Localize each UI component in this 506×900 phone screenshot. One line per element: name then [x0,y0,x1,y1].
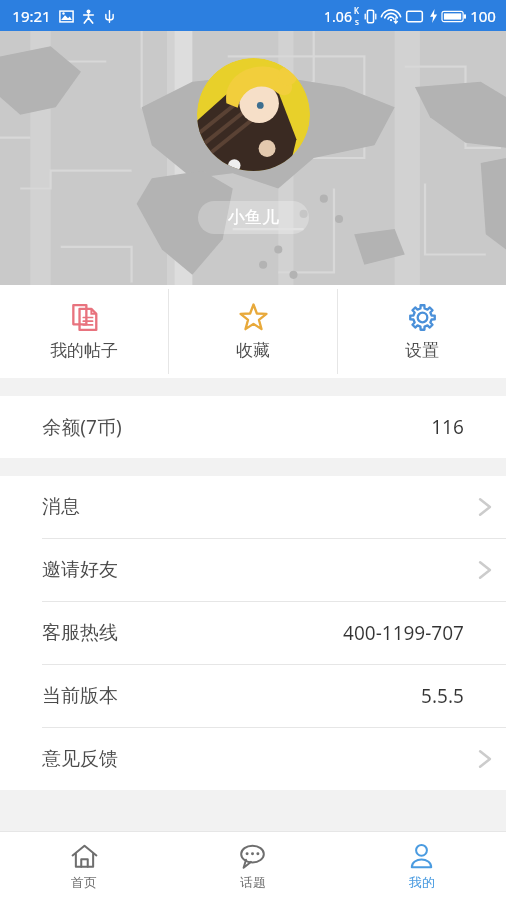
button[interactable]: 客服热线 [0,602,506,664]
staticText: K [354,5,359,16]
staticText: 我的帖子 [50,340,118,361]
button[interactable]: 我的帖子 [0,285,168,378]
button[interactable]: 余额(7币) [0,396,506,458]
staticText: 1.06 [324,7,352,26]
staticText: 话题 [240,874,266,890]
staticText: 100 [470,6,496,26]
staticText: 消息 [42,495,80,519]
staticText: s [355,16,359,27]
staticText: 400-1199-707 [343,620,464,646]
button[interactable]: 消息 [0,476,506,538]
staticText: 首页 [71,874,97,890]
staticText: 小鱼儿 [228,207,279,228]
button[interactable]: 小鱼儿 [198,201,309,234]
button[interactable]: 当前版本 [0,665,506,727]
staticText: 当前版本 [42,684,118,708]
staticText: 19:21 [12,6,51,26]
button[interactable]: 邀请好友 [0,539,506,601]
staticText: 116 [431,414,464,440]
button[interactable]: 设置 [338,285,506,378]
staticText: 客服热线 [42,621,118,645]
button[interactable]: 话题 [168,832,337,900]
staticText: 意见反馈 [42,747,118,771]
staticText: 收藏 [236,340,270,361]
staticText: 我的 [409,874,435,890]
button[interactable]: Avatar [197,58,310,171]
button[interactable]: 我的 [337,832,506,900]
staticText: 设置 [405,340,439,361]
button[interactable]: 收藏 [169,285,337,378]
staticText: 余额(7币) [42,414,122,440]
staticText: 5.5.5 [421,683,464,709]
staticText: 邀请好友 [42,558,118,582]
button[interactable]: 意见反馈 [0,728,506,790]
button[interactable]: 首页 [0,832,168,900]
